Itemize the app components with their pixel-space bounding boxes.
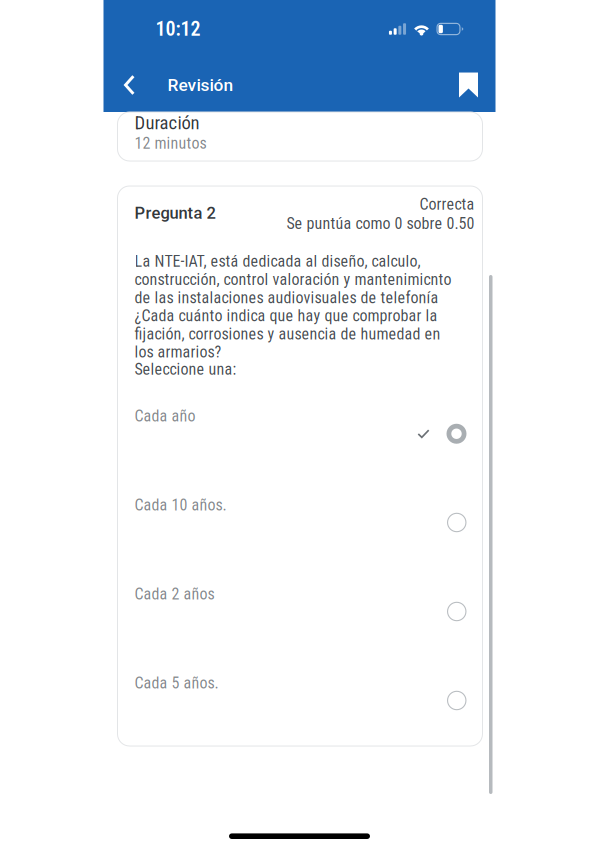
staticText: Revisión — [167, 75, 233, 95]
button[interactable]: Cada 5 años. — [134, 669, 474, 758]
button[interactable]: Cada 10 años. — [134, 491, 474, 580]
staticText: Correcta — [419, 195, 474, 214]
staticText: de las instalaciones audiovisuales de te… — [134, 288, 438, 307]
button[interactable]: Cada año — [134, 402, 474, 491]
staticText: Pregunta 2 — [134, 203, 215, 223]
staticText: Cada 2 años — [134, 585, 214, 604]
staticText: Cada 10 años. — [134, 496, 226, 515]
button[interactable]: Atrás — [113, 63, 145, 107]
staticText: 10:12 — [155, 17, 200, 41]
staticText: La NTE-IAT, está dedicada al diseño, cal… — [134, 252, 420, 271]
button[interactable]: Marcador — [452, 63, 484, 107]
staticText: los armarios? — [134, 343, 221, 362]
staticText: 12 minutos — [134, 134, 206, 153]
staticText: Duración — [134, 112, 199, 134]
staticText: Seleccione una: — [134, 360, 236, 379]
staticText: Se puntúa como 0 sobre 0.50 — [286, 214, 474, 233]
staticText: Cada 5 años. — [134, 674, 218, 693]
staticText: fijación, corrosiones y ausencia de hume… — [134, 325, 440, 343]
button[interactable]: Cada 2 años — [134, 580, 474, 669]
staticText: ¿Cada cuánto indica que hay que comproba… — [134, 306, 437, 325]
staticText: Cada año — [134, 407, 195, 426]
staticText: construcción, control valoración y mante… — [134, 270, 451, 289]
